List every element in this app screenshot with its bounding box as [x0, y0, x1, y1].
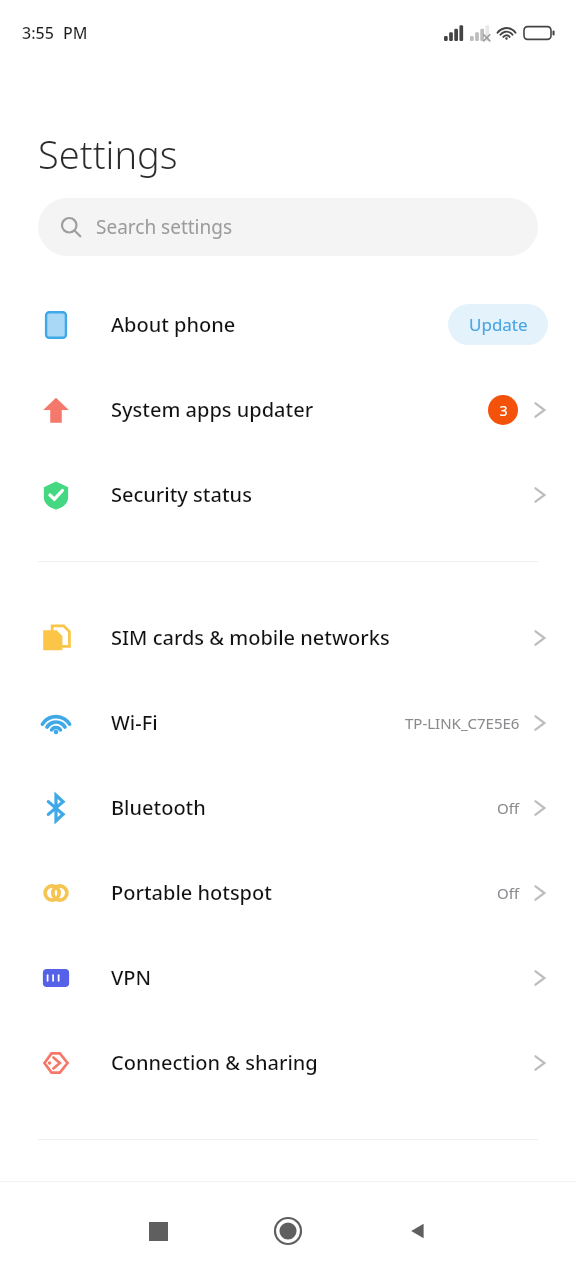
staticText: TP-LINK_C7E5E6	[405, 713, 520, 733]
staticText: PM	[63, 22, 88, 44]
button[interactable]: Back	[353, 1182, 483, 1280]
button[interactable]: VPN	[0, 935, 576, 1020]
staticText: Connection & sharing	[111, 1049, 318, 1076]
staticText: System apps updater	[111, 396, 314, 423]
button[interactable]: Portable hotspot	[0, 850, 576, 935]
staticText: About phone	[111, 311, 236, 338]
staticText: Off	[497, 798, 520, 818]
staticText: Security status	[111, 481, 252, 508]
button[interactable]: About phone	[0, 282, 576, 367]
staticText: Search settings	[96, 214, 233, 240]
staticText: Wi-Fi	[111, 709, 158, 736]
button[interactable]: Security status	[0, 452, 576, 537]
staticText: Portable hotspot	[111, 879, 272, 906]
button[interactable]: Update	[448, 304, 548, 345]
staticText: 3	[499, 401, 508, 420]
staticText: VPN	[111, 964, 152, 991]
button[interactable]: Wi-Fi	[0, 680, 576, 765]
staticText: Update	[469, 313, 528, 336]
button[interactable]: System apps updater	[0, 367, 576, 452]
button[interactable]: Search settings	[38, 198, 538, 256]
staticText: Bluetooth	[111, 794, 206, 821]
button[interactable]: SIM cards & mobile networks	[0, 595, 576, 680]
staticText: 3:55	[22, 22, 54, 44]
button[interactable]: Bluetooth	[0, 765, 576, 850]
button[interactable]: Home	[223, 1182, 353, 1280]
button[interactable]: Recent apps	[93, 1182, 223, 1280]
staticText: Settings	[38, 128, 178, 180]
staticText: SIM cards & mobile networks	[111, 624, 390, 651]
staticText: Off	[497, 883, 520, 903]
button[interactable]: Connection & sharing	[0, 1020, 576, 1105]
